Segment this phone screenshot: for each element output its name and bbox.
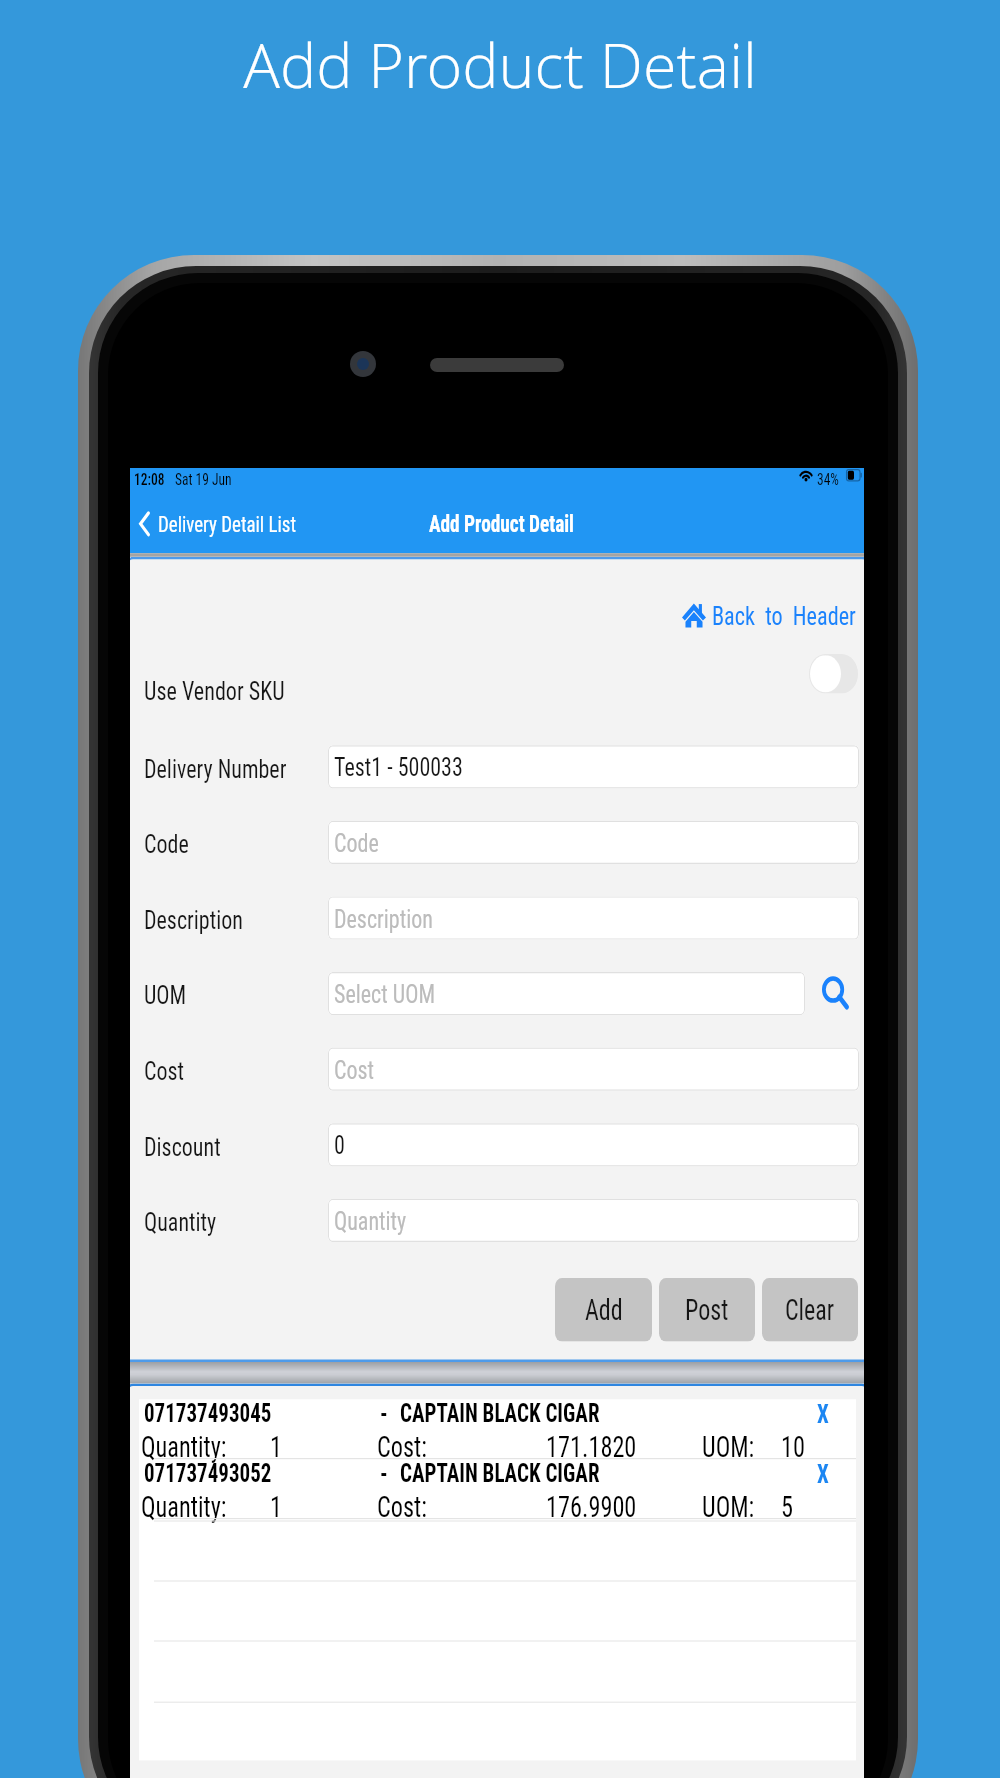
button[interactable]: Clear [762,1278,858,1342]
button[interactable]: Add [555,1278,652,1342]
staticText: UOM: [702,1489,755,1523]
staticText: - [380,1459,388,1489]
staticText: Back to Header [712,600,856,631]
staticText: Add [585,1294,623,1327]
staticText: Quantity: [141,1429,227,1463]
staticText: 0 [334,1130,345,1162]
staticText: Test1 - 500033 [334,752,463,784]
staticText: Discount [144,1132,221,1163]
staticText: 071737493052 [144,1459,272,1489]
button[interactable]: Quantity [328,1199,859,1242]
staticText: X [817,1460,829,1490]
staticText: 176.9900 [546,1489,637,1523]
staticText: 10 [781,1429,805,1463]
button[interactable]: Code [328,821,859,864]
button[interactable]: 0 [328,1123,859,1166]
button[interactable]: Back to Header [682,599,856,632]
staticText: Quantity [144,1207,217,1238]
staticText: 171.1820 [546,1429,637,1463]
staticText: Cost [144,1056,185,1087]
staticText: UOM [144,980,187,1012]
staticText: Cost [334,1055,375,1086]
staticText: Quantity [334,1206,407,1237]
staticText: Cost: [377,1489,427,1523]
button[interactable]: Select UOM [328,972,805,1015]
button[interactable]: Delivery Detail List [134,504,297,542]
staticText: UOM: [702,1429,755,1463]
staticText: 071737493045 [144,1399,272,1429]
button[interactable]: Use Vendor SKU toggle [809,654,858,694]
staticText: Delivery Number [144,754,287,785]
staticText: - [380,1399,388,1429]
staticText: 5 [781,1489,793,1523]
staticText: 1 [270,1429,282,1463]
staticText: Sat 19 Jun [175,469,232,488]
staticText: Description [144,905,243,936]
staticText: 34% [817,469,839,488]
staticText: Cost: [377,1429,427,1463]
button[interactable]: Remove item [807,1399,839,1430]
button[interactable]: Description [328,896,859,940]
staticText: Select UOM [334,979,435,1010]
staticText: Code [334,828,379,859]
button[interactable]: Search UOM [813,970,857,1018]
staticText: Code [144,829,189,860]
button[interactable]: Test1 - 500033 [328,745,859,788]
staticText: Quantity: [141,1489,227,1523]
button[interactable]: 071737493045 [139,1399,856,1459]
staticText: CAPTAIN BLACK CIGAR [400,1399,600,1429]
staticText: Add Product Detail [429,510,574,538]
staticText: 1 [270,1489,282,1523]
staticText: Use Vendor SKU [144,674,285,706]
button[interactable]: Remove item [807,1459,839,1490]
staticText: X [817,1400,829,1430]
staticText: Post [685,1294,729,1327]
staticText: 12:08 [134,469,165,488]
button[interactable]: Post [659,1278,755,1342]
staticText: CAPTAIN BLACK CIGAR [400,1459,600,1489]
button[interactable]: 071737493052 [139,1459,856,1519]
staticText: Delivery Detail List [158,510,297,536]
button[interactable]: Cost [328,1048,859,1091]
staticText: Clear [785,1294,835,1327]
staticText: Description [334,904,433,935]
staticText: Add Product Detail [0,23,1000,106]
